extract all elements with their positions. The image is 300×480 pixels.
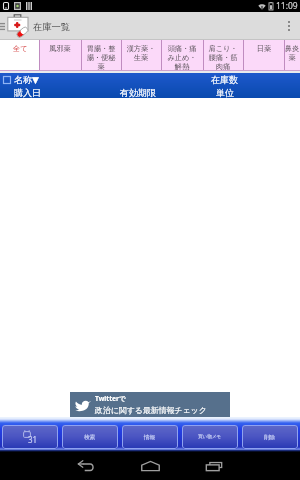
staticText: 購入日	[14, 87, 41, 98]
staticText: 情報	[144, 434, 156, 441]
button[interactable]: 頭痛・痛み止め・解熱	[161, 40, 203, 71]
staticText: 在庫一覧	[33, 21, 71, 33]
button[interactable]: 風邪薬	[39, 40, 81, 71]
button[interactable]: 31	[2, 425, 58, 449]
staticText: 削除	[264, 434, 276, 441]
staticText: 検索	[84, 434, 96, 441]
staticText: 風邪薬	[44, 44, 76, 53]
button[interactable]: More options	[278, 12, 300, 40]
staticText: 11:09	[276, 0, 298, 12]
button[interactable]: 情報	[122, 425, 178, 449]
staticText: 単位	[216, 87, 234, 98]
button[interactable]: Back	[69, 452, 103, 480]
button[interactable]: Navigation drawer	[0, 12, 10, 40]
staticText: 胃腸・整腸・便秘薬	[85, 44, 117, 71]
staticText: 鼻炎薬	[284, 44, 300, 62]
staticText: 日薬	[248, 44, 280, 53]
staticText: 名称▼	[14, 74, 39, 85]
staticText: 有効期限	[120, 87, 156, 98]
button[interactable]: Recent apps	[197, 452, 231, 480]
staticText: 在庫数	[211, 74, 238, 85]
staticText: 漢方薬・生薬	[125, 44, 157, 62]
button[interactable]: 肩こり・腰痛・筋肉痛	[203, 40, 243, 71]
button[interactable]: 全て	[0, 40, 39, 71]
staticText: 政治に関する最新情報チェック	[95, 405, 207, 415]
button[interactable]: 漢方薬・生薬	[121, 40, 161, 71]
button[interactable]: 検索	[62, 425, 118, 449]
button[interactable]: 買い物メモ	[182, 425, 238, 449]
button[interactable]: 日薬	[243, 40, 284, 71]
button[interactable]: 削除	[242, 425, 298, 449]
staticText: 肩こり・腰痛・筋肉痛	[207, 44, 239, 71]
staticText: 頭痛・痛み止め・解熱	[166, 44, 198, 71]
button[interactable]: Twitterで	[70, 392, 230, 417]
staticText: 全て	[4, 44, 36, 53]
staticText: Twitterで	[95, 394, 126, 403]
button[interactable]: 胃腸・整腸・便秘薬	[81, 40, 121, 71]
button[interactable]: 鼻炎薬	[284, 40, 300, 71]
button[interactable]: Home	[133, 452, 167, 480]
staticText: 買い物メモ	[198, 434, 222, 440]
staticText: 31	[28, 434, 38, 445]
